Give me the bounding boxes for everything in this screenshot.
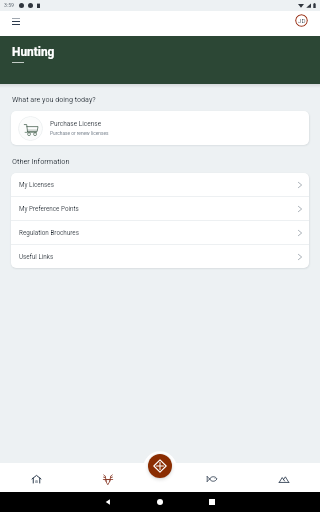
staticText: What are you doing today? [12, 95, 96, 103]
button[interactable]: My Preference Points [11, 197, 309, 220]
staticText: JD [298, 17, 306, 24]
button[interactable]: Outdoors [270, 465, 298, 493]
staticText: Purchase or renew licenses [50, 131, 109, 137]
button[interactable]: Profile [295, 14, 308, 27]
button[interactable]: Useful Links [11, 245, 309, 268]
button[interactable]: Fishing [198, 465, 226, 493]
button[interactable]: Navigate [148, 454, 172, 478]
staticText: My Licenses [19, 181, 54, 188]
staticText: Hunting [12, 45, 55, 59]
button[interactable]: Home [22, 465, 50, 493]
staticText: Regulation Brochures [19, 229, 79, 236]
staticText: Purchase License [50, 120, 102, 128]
staticText: My Preference Points [19, 205, 79, 212]
button[interactable]: Menu [8, 13, 24, 29]
button[interactable]: Purchase License [11, 111, 309, 145]
staticText: Other Information [12, 157, 70, 166]
button[interactable]: Hunting [94, 465, 122, 493]
staticText: Useful Links [19, 253, 54, 260]
button[interactable]: Regulation Brochures [11, 221, 309, 244]
button[interactable]: My Licenses [11, 173, 309, 196]
staticText: 3:59 [4, 2, 15, 8]
